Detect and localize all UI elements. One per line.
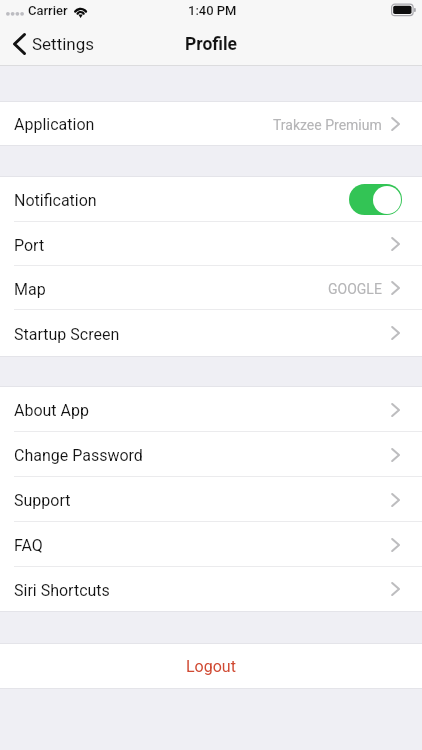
button[interactable]: Support: [0, 477, 422, 522]
staticText: GOOGLE: [328, 281, 382, 297]
button[interactable]: Back: [0, 29, 105, 59]
staticText: Profile: [185, 34, 238, 55]
staticText: Siri Shortcuts: [14, 581, 110, 600]
staticText: Application: [14, 115, 95, 134]
button[interactable]: Application: [0, 102, 422, 145]
button[interactable]: FAQ: [0, 522, 422, 567]
button[interactable]: Map: [0, 266, 422, 310]
button[interactable]: Notification toggle: [349, 184, 402, 215]
staticText: Logout: [186, 657, 236, 676]
button[interactable]: Startup Screen: [0, 310, 422, 356]
button[interactable]: Change Password: [0, 432, 422, 477]
staticText: Trakzee Premium: [273, 117, 382, 133]
button[interactable]: Notification: [0, 177, 422, 222]
staticText: Map: [14, 280, 46, 299]
staticText: FAQ: [14, 536, 43, 555]
staticText: Change Password: [14, 446, 143, 465]
staticText: Notification: [14, 191, 97, 210]
button[interactable]: About App: [0, 387, 422, 432]
button[interactable]: Logout: [0, 644, 422, 688]
staticText: About App: [14, 401, 89, 420]
button[interactable]: Siri Shortcuts: [0, 567, 422, 611]
staticText: Carrier: [28, 3, 68, 18]
staticText: 1:40 PM: [188, 3, 237, 18]
staticText: Settings: [32, 34, 95, 54]
button[interactable]: Port: [0, 222, 422, 266]
staticText: Port: [14, 236, 45, 255]
other: Back: [13, 33, 26, 55]
staticText: Startup Screen: [14, 325, 120, 344]
staticText: Support: [14, 491, 71, 510]
